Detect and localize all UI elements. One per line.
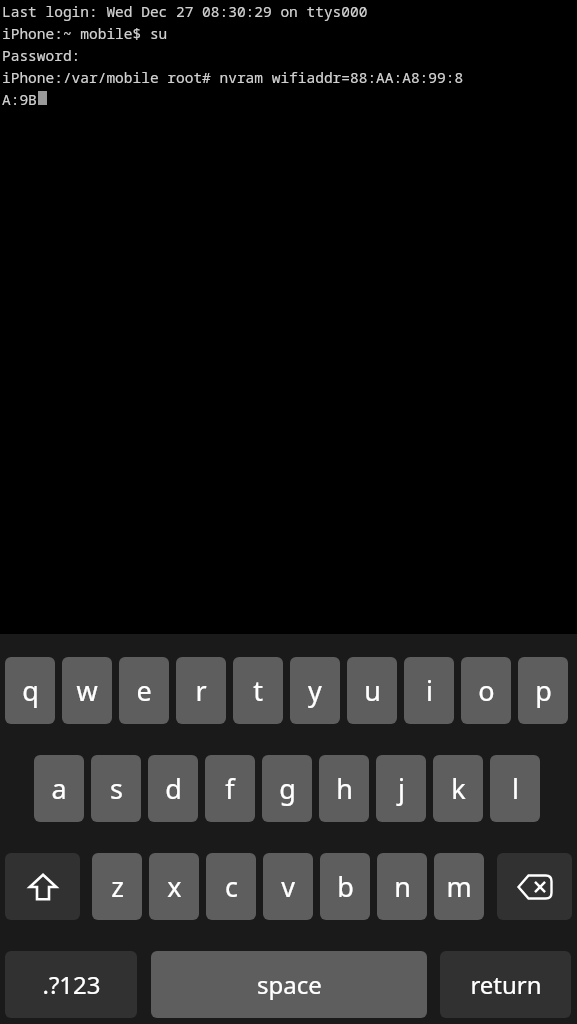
staticText: m [446, 868, 472, 905]
button[interactable]: g [262, 755, 312, 822]
staticText: iPhone:/var/mobile root# nvram wifiaddr=… [2, 67, 464, 87]
button[interactable]: v [263, 853, 313, 920]
staticText: y [308, 672, 322, 709]
staticText: t [253, 672, 263, 709]
button[interactable]: space [151, 951, 427, 1018]
button[interactable]: s [91, 755, 141, 822]
staticText: space [257, 968, 322, 1001]
staticText: r [195, 672, 207, 709]
staticText: x [167, 868, 182, 905]
button[interactable]: Backspace [497, 853, 572, 920]
staticText: i [426, 672, 433, 709]
staticText: a [51, 770, 67, 807]
staticText: A:9B [2, 89, 37, 109]
button[interactable]: u [347, 657, 397, 724]
button[interactable]: b [320, 853, 370, 920]
staticText: n [394, 868, 411, 905]
staticText: return [470, 968, 542, 1001]
staticText: q [22, 672, 39, 709]
button[interactable]: .?123 [5, 951, 137, 1018]
staticText: d [165, 770, 182, 807]
staticText: u [364, 672, 381, 709]
staticText: .?123 [42, 968, 101, 1001]
button[interactable]: w [62, 657, 112, 724]
staticText: Last login: Wed Dec 27 08:30:29 on ttys0… [2, 1, 368, 21]
button[interactable]: return [440, 951, 571, 1018]
staticText: g [279, 770, 296, 807]
button[interactable]: n [377, 853, 427, 920]
staticText: f [225, 770, 235, 807]
staticText: e [136, 672, 152, 709]
button[interactable]: a [34, 755, 84, 822]
staticText: h [336, 770, 353, 807]
staticText: s [110, 770, 123, 807]
button[interactable]: r [176, 657, 226, 724]
button[interactable]: z [92, 853, 142, 920]
button[interactable]: m [434, 853, 484, 920]
button[interactable]: p [518, 657, 568, 724]
button[interactable]: c [206, 853, 256, 920]
staticText: Password: [2, 45, 81, 65]
button[interactable]: l [490, 755, 540, 822]
button[interactable]: o [461, 657, 511, 724]
staticText: o [478, 672, 495, 709]
button[interactable]: y [290, 657, 340, 724]
button[interactable]: h [319, 755, 369, 822]
staticText: k [451, 770, 466, 807]
staticText: l [512, 770, 519, 807]
button[interactable]: j [376, 755, 426, 822]
button[interactable]: d [148, 755, 198, 822]
staticText: iPhone:~ mobile$ su [2, 23, 168, 43]
button[interactable]: e [119, 657, 169, 724]
button[interactable]: x [149, 853, 199, 920]
staticText: v [281, 868, 295, 905]
button[interactable]: f [205, 755, 255, 822]
staticText: w [76, 672, 98, 709]
staticText: p [535, 672, 552, 709]
button[interactable]: Shift [5, 853, 80, 920]
staticText: j [398, 770, 405, 807]
button[interactable]: q [5, 657, 55, 724]
staticText: z [111, 868, 124, 905]
button[interactable]: i [404, 657, 454, 724]
button[interactable]: t [233, 657, 283, 724]
button[interactable]: k [433, 755, 483, 822]
staticText: b [337, 868, 354, 905]
staticText: c [225, 868, 238, 905]
